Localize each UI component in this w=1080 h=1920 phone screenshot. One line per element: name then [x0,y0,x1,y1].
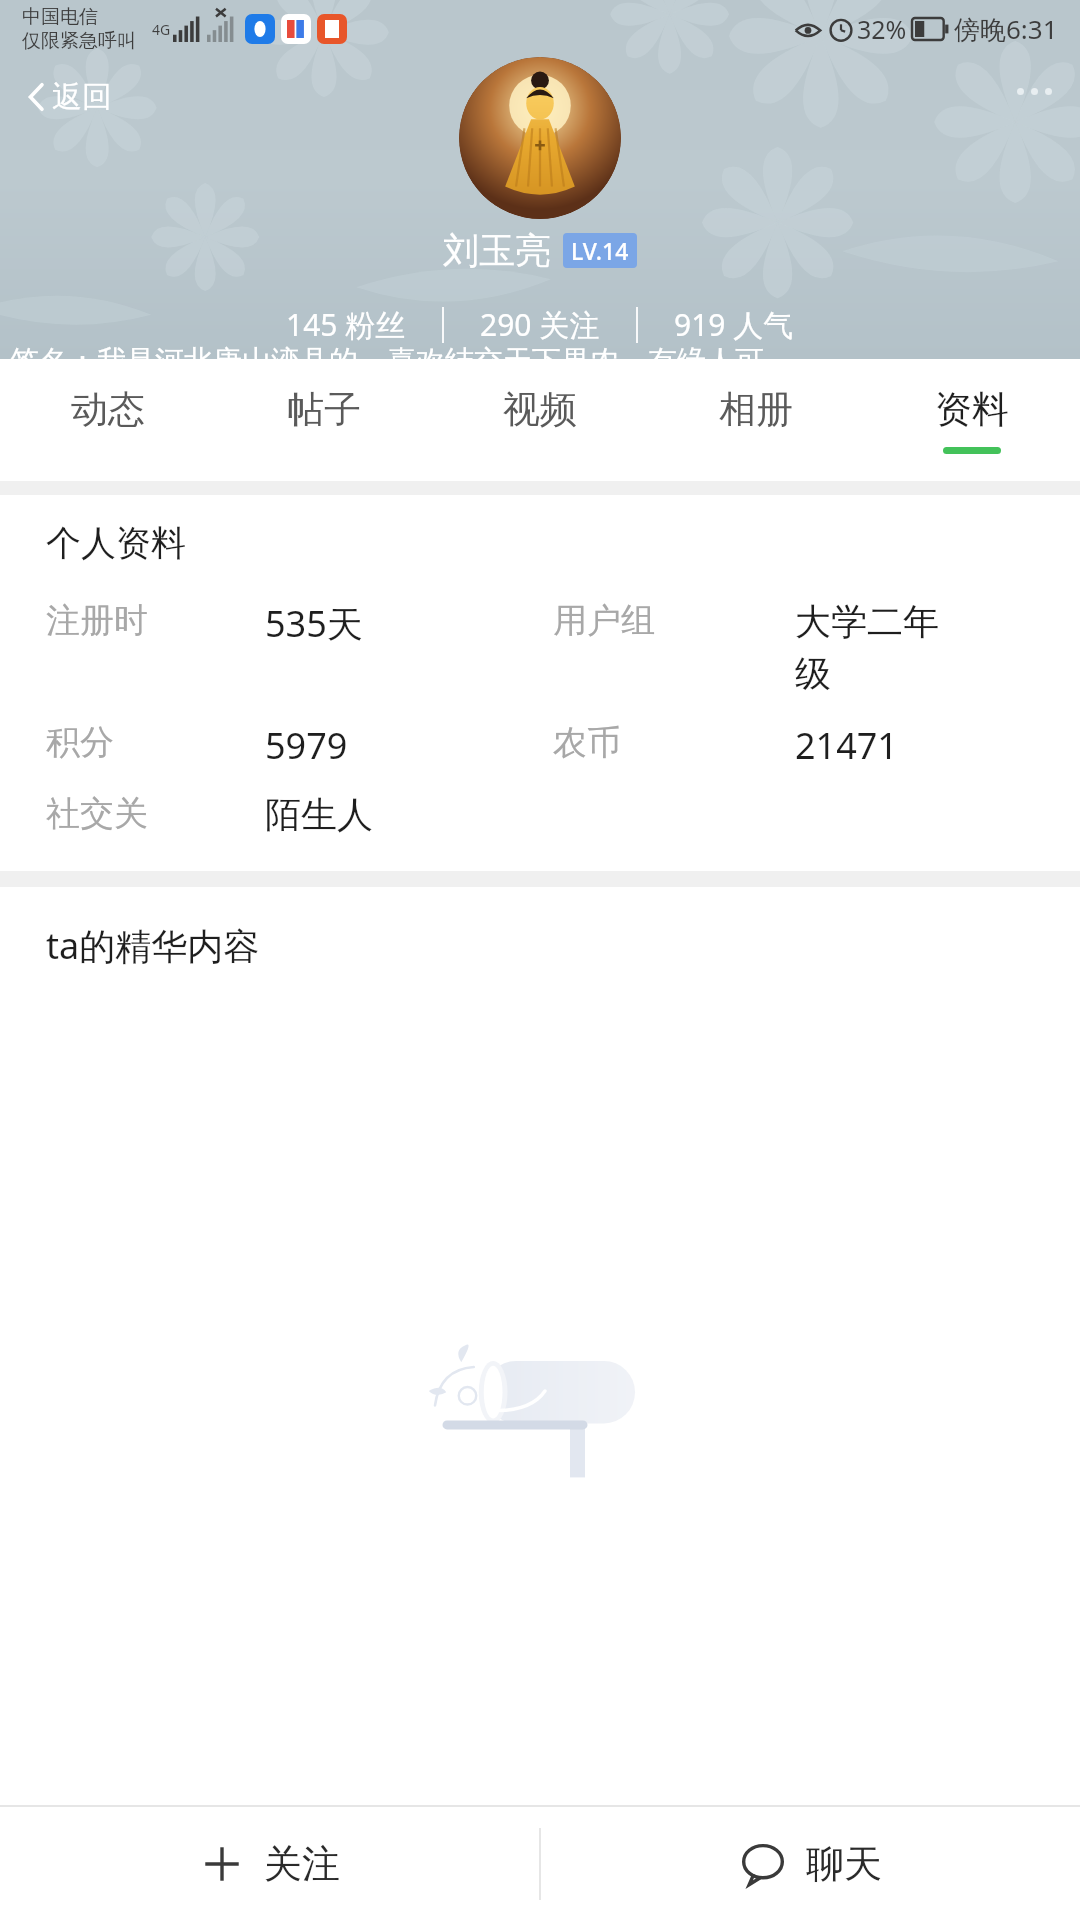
staticText: 聊天 [806,1840,882,1888]
button[interactable]: 签名：我是河北唐山滦县的，喜欢结交天下果农，有缘人可… [0,340,1080,359]
staticText: 中国电信 [22,5,98,29]
staticText: 农币 [553,721,621,764]
staticText: 4G [152,20,171,39]
staticText: 21471 [795,721,898,770]
staticText: 帖子 [287,386,361,433]
staticText: 陌生人 [265,792,373,837]
button[interactable]: 290 关注 [472,300,608,349]
button[interactable]: 聊天 [541,1807,1080,1920]
staticText: 积分 [46,721,114,764]
button[interactable]: Avatar [459,57,621,219]
staticText: 919 人气 [674,304,794,345]
staticText: 视频 [503,386,577,433]
staticText: 刘玉亮 [443,228,551,273]
button[interactable]: 关注 [0,1807,539,1920]
staticText: LV.14 [571,235,629,266]
button[interactable]: 145 粉丝 [278,300,414,349]
staticText: ta的精华内容 [46,921,260,970]
staticText: 资料 [935,386,1009,433]
staticText: 返回 [52,78,112,116]
staticText: 动态 [71,386,145,433]
staticText: 关注 [264,1840,340,1888]
button[interactable]: 动态 [0,359,216,481]
staticText: 用户组 [553,599,655,642]
staticText: 签名：我是河北唐山滦县的，喜欢结交天下果农，有缘人可… [10,340,787,359]
button[interactable]: 919 人气 [666,300,802,349]
button[interactable]: 返回 [16,72,122,122]
staticText: 社交关 [46,792,148,835]
staticText: 145 粉丝 [286,304,406,345]
staticText: 5979 [265,721,348,770]
button[interactable]: 相册 [648,359,864,481]
staticText: 大学二年 级 [795,599,939,697]
staticText: 傍晚6:31 [954,11,1058,47]
staticText: 32% [857,12,907,46]
staticText: 535天 [265,599,363,648]
button[interactable]: 视频 [432,359,648,481]
staticText: 仅限紧急呼叫 [22,29,136,53]
staticText: 个人资料 [46,521,186,565]
button[interactable]: 资料 [864,359,1080,481]
staticText: 相册 [719,386,793,433]
staticText: 290 关注 [480,304,600,345]
button[interactable]: 帖子 [216,359,432,481]
button[interactable]: LV.14 [563,233,637,268]
button[interactable]: More options [1007,78,1062,105]
staticText: 注册时 [46,599,148,642]
